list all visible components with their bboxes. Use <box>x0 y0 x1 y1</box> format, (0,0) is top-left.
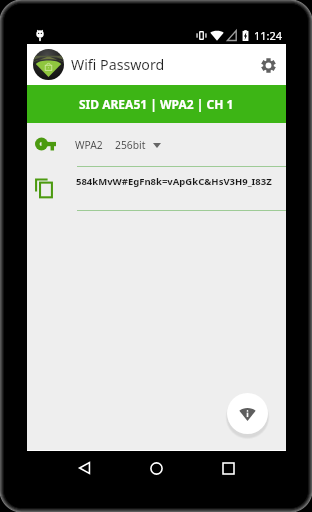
button[interactable]: Home <box>128 452 184 484</box>
staticText: Wifi Password <box>71 55 165 74</box>
staticText: WPA2 <box>75 138 103 152</box>
button[interactable]: Recents <box>200 452 256 484</box>
staticText: 11:24 <box>254 28 283 43</box>
staticText: SID AREA51 | WPA2 | CH 1 <box>79 96 234 112</box>
button[interactable]: 584kMvW#EgFn8k=vApGkC&HsV3H9_I83Z <box>35 167 286 210</box>
button[interactable]: WPA2 <box>75 138 161 152</box>
button[interactable]: Wifi info <box>227 393 268 434</box>
button[interactable]: SID AREA51 | WPA2 | CH 1 <box>27 85 286 123</box>
staticText: 256bit <box>115 138 146 152</box>
button[interactable]: Back <box>56 452 112 484</box>
button[interactable]: Settings <box>251 48 285 82</box>
staticText: 584kMvW#EgFn8k=vApGkC&HsV3H9_I83Z <box>76 175 272 188</box>
